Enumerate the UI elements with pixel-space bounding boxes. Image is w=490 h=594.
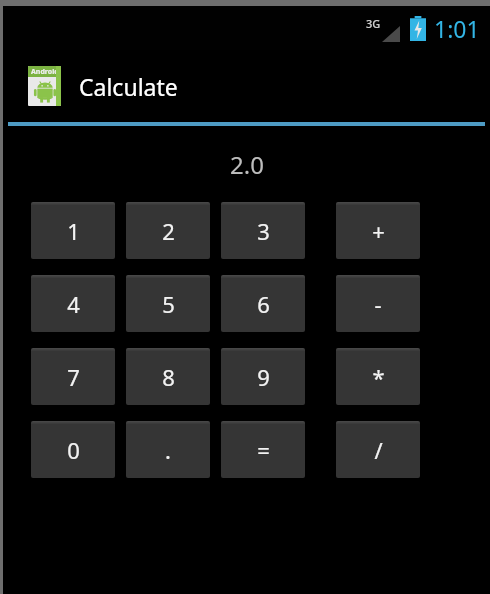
button[interactable]: 1 (31, 202, 115, 259)
button[interactable]: 3 (221, 202, 305, 259)
button[interactable]: = (221, 421, 305, 478)
button[interactable]: 4 (31, 275, 115, 332)
staticText: 3 (257, 216, 270, 246)
button[interactable]: . (126, 421, 210, 478)
staticText: 4 (67, 289, 80, 319)
staticText: 1 (67, 216, 80, 246)
staticText: 2.0 (230, 148, 264, 181)
staticText: Android (31, 67, 59, 77)
button[interactable]: + (336, 202, 420, 259)
button[interactable]: * (336, 348, 420, 405)
button[interactable]: 9 (221, 348, 305, 405)
staticText: / (374, 435, 383, 465)
button[interactable]: 6 (221, 275, 305, 332)
button[interactable]: - (336, 275, 420, 332)
staticText: Calculate (79, 71, 178, 102)
staticText: 2 (162, 216, 175, 246)
staticText: 1:01 (434, 13, 480, 44)
button[interactable]: 7 (31, 348, 115, 405)
button[interactable]: 0 (31, 421, 115, 478)
staticText: 8 (162, 362, 175, 392)
other: App icon (28, 66, 61, 106)
staticText: = (257, 435, 270, 465)
staticText: 9 (257, 362, 270, 392)
staticText: 0 (67, 435, 80, 465)
button[interactable]: / (336, 421, 420, 478)
button[interactable]: 8 (126, 348, 210, 405)
staticText: . (165, 435, 171, 465)
staticText: 7 (67, 362, 80, 392)
button[interactable]: 5 (126, 275, 210, 332)
staticText: 5 (162, 289, 175, 319)
button[interactable]: 2 (126, 202, 210, 259)
staticText: - (374, 289, 382, 319)
staticText: 6 (257, 289, 270, 319)
staticText: + (372, 216, 385, 246)
staticText: 3G (366, 16, 381, 31)
staticText: * (372, 362, 385, 392)
